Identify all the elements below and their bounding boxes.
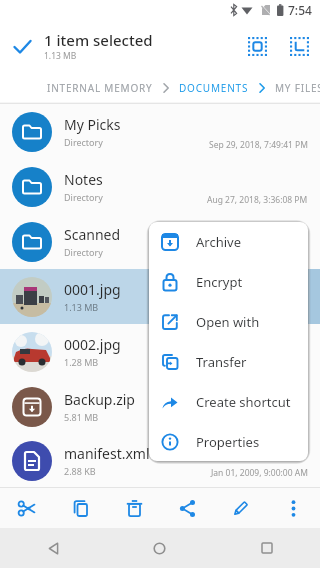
- button[interactable]: Open with: [149, 302, 308, 342]
- staticText: Aug 27, 2018, 3:36:08 PM: [207, 194, 308, 206]
- staticText: INTERNAL MEMORY: [47, 81, 153, 95]
- staticText: Directory: [64, 136, 103, 148]
- staticText: 0002.jpg: [64, 335, 121, 354]
- button[interactable]: 0002.jpg: [0, 324, 320, 379]
- button[interactable]: [213, 528, 320, 568]
- button[interactable]: Notes: [0, 159, 320, 214]
- button[interactable]: [214, 488, 267, 528]
- staticText: Scanned: [64, 225, 121, 244]
- staticText: 1.13 MB: [44, 50, 77, 62]
- staticText: Jan 01, 2009, 9:00:00 AM: [211, 467, 308, 479]
- staticText: Create shortcut: [196, 393, 291, 411]
- button[interactable]: My Picks: [0, 104, 320, 159]
- button[interactable]: [106, 528, 213, 568]
- button[interactable]: [161, 488, 214, 528]
- button[interactable]: Backup.zip: [0, 379, 320, 434]
- staticText: MY FILES: [275, 81, 320, 95]
- button[interactable]: Archive: [149, 222, 308, 262]
- button[interactable]: [278, 20, 320, 72]
- staticText: 0001.jpg: [64, 280, 121, 299]
- button[interactable]: Create shortcut: [149, 382, 308, 422]
- staticText: Archive: [196, 233, 241, 251]
- staticText: 5.81 MB: [64, 411, 99, 423]
- staticText: Properties: [196, 433, 260, 451]
- staticText: Directory: [64, 191, 103, 203]
- staticText: 1 item selected: [44, 30, 153, 50]
- button[interactable]: manifest.xml: [0, 434, 320, 487]
- button[interactable]: [267, 488, 320, 528]
- staticText: My Picks: [64, 115, 121, 134]
- button[interactable]: DOCUMENTS: [179, 81, 249, 95]
- staticText: 2.88 KB: [64, 465, 96, 477]
- button[interactable]: 0001.jpg: [0, 269, 320, 324]
- staticText: Notes: [64, 170, 103, 189]
- button[interactable]: Encrypt: [149, 262, 308, 302]
- staticText: Encrypt: [196, 273, 243, 291]
- staticText: DOCUMENTS: [179, 81, 249, 95]
- staticText: 1.13 MB: [64, 301, 99, 313]
- staticText: Sep 29, 2018, 7:49:41 PM: [209, 139, 308, 151]
- staticText: 1.28 MB: [64, 356, 99, 368]
- button[interactable]: [0, 488, 54, 528]
- button[interactable]: [236, 20, 278, 72]
- button[interactable]: Scanned: [0, 214, 320, 269]
- button[interactable]: [0, 528, 106, 568]
- staticText: Open with: [196, 313, 260, 331]
- button[interactable]: [0, 24, 44, 68]
- button[interactable]: Transfer: [149, 342, 308, 382]
- staticText: Directory: [64, 246, 103, 258]
- button[interactable]: Properties: [149, 422, 308, 461]
- staticText: Backup.zip: [64, 390, 135, 409]
- button[interactable]: [54, 488, 108, 528]
- staticText: 7:54: [288, 2, 312, 18]
- staticText: manifest.xml: [64, 444, 150, 463]
- button[interactable]: [108, 488, 161, 528]
- staticText: Transfer: [196, 353, 247, 371]
